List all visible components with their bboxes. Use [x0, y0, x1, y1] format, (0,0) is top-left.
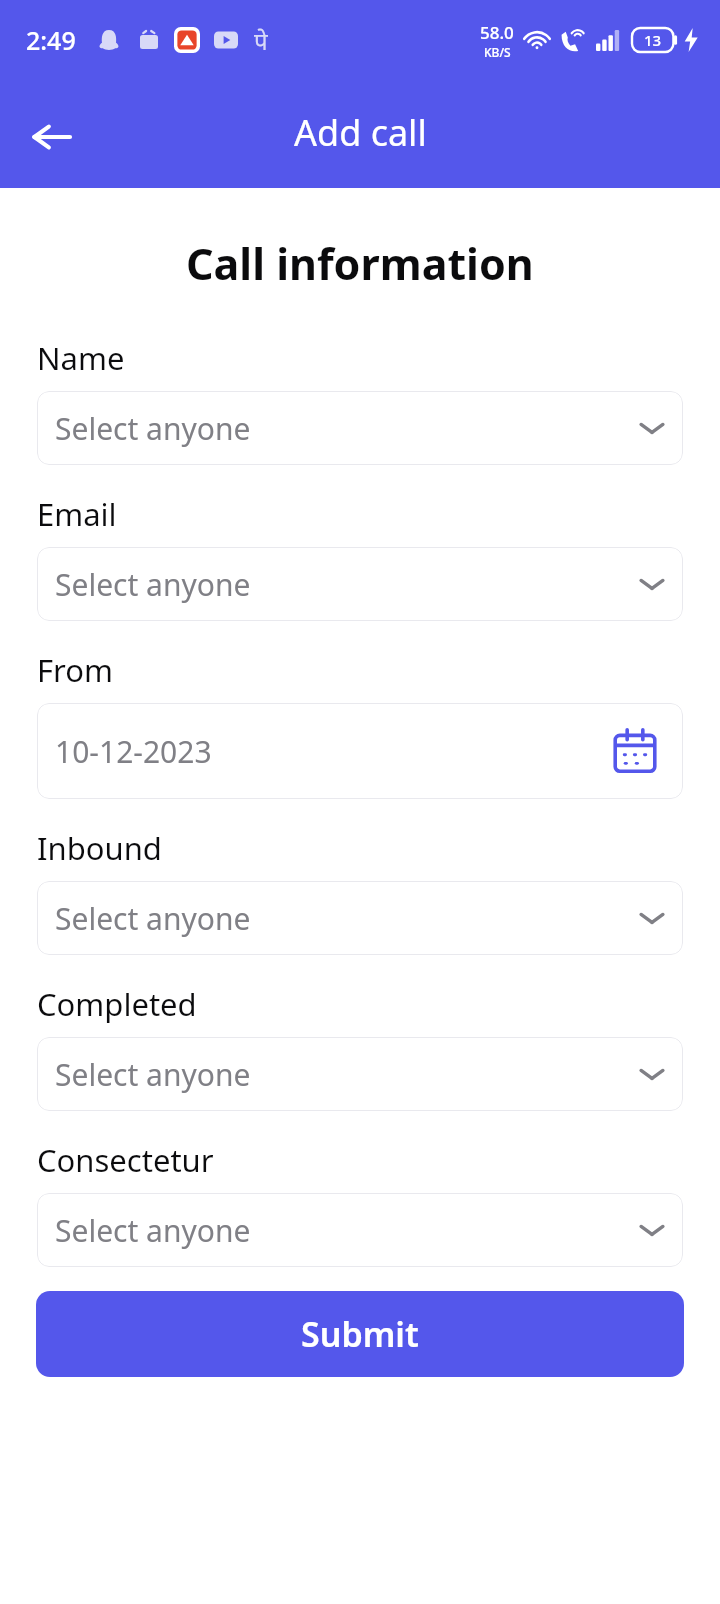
staticText: Consectetur	[37, 1139, 214, 1181]
button[interactable]: Select anyone	[37, 881, 683, 955]
button[interactable]: Pick date	[609, 725, 661, 777]
staticText: Select anyone	[55, 408, 251, 449]
staticText: Name	[37, 337, 125, 379]
staticText: 13	[644, 30, 662, 50]
button[interactable]: Select anyone	[37, 547, 683, 621]
button[interactable]: Back	[20, 105, 84, 169]
staticText: Email	[37, 493, 117, 535]
staticText: Select anyone	[55, 1210, 251, 1251]
button[interactable]: Submit	[36, 1291, 684, 1377]
staticText: From	[37, 649, 114, 691]
button[interactable]: Select anyone	[37, 391, 683, 465]
staticText: Select anyone	[55, 564, 251, 605]
button[interactable]: Select anyone	[37, 1193, 683, 1267]
staticText: KB/S	[484, 44, 511, 60]
staticText: पे	[254, 24, 268, 57]
staticText: Submit	[301, 1311, 419, 1357]
staticText: 10-12-2023	[55, 731, 212, 772]
staticText: Inbound	[37, 827, 162, 869]
button[interactable]: 10-12-2023	[37, 703, 683, 799]
staticText: 2:49	[26, 23, 76, 57]
staticText: 58.0	[480, 21, 514, 44]
staticText: Select anyone	[55, 1054, 251, 1095]
staticText: Select anyone	[55, 898, 251, 939]
staticText: Call information	[186, 234, 534, 293]
staticText: Completed	[37, 983, 197, 1025]
button[interactable]: Select anyone	[37, 1037, 683, 1111]
staticText: Add call	[294, 108, 427, 157]
